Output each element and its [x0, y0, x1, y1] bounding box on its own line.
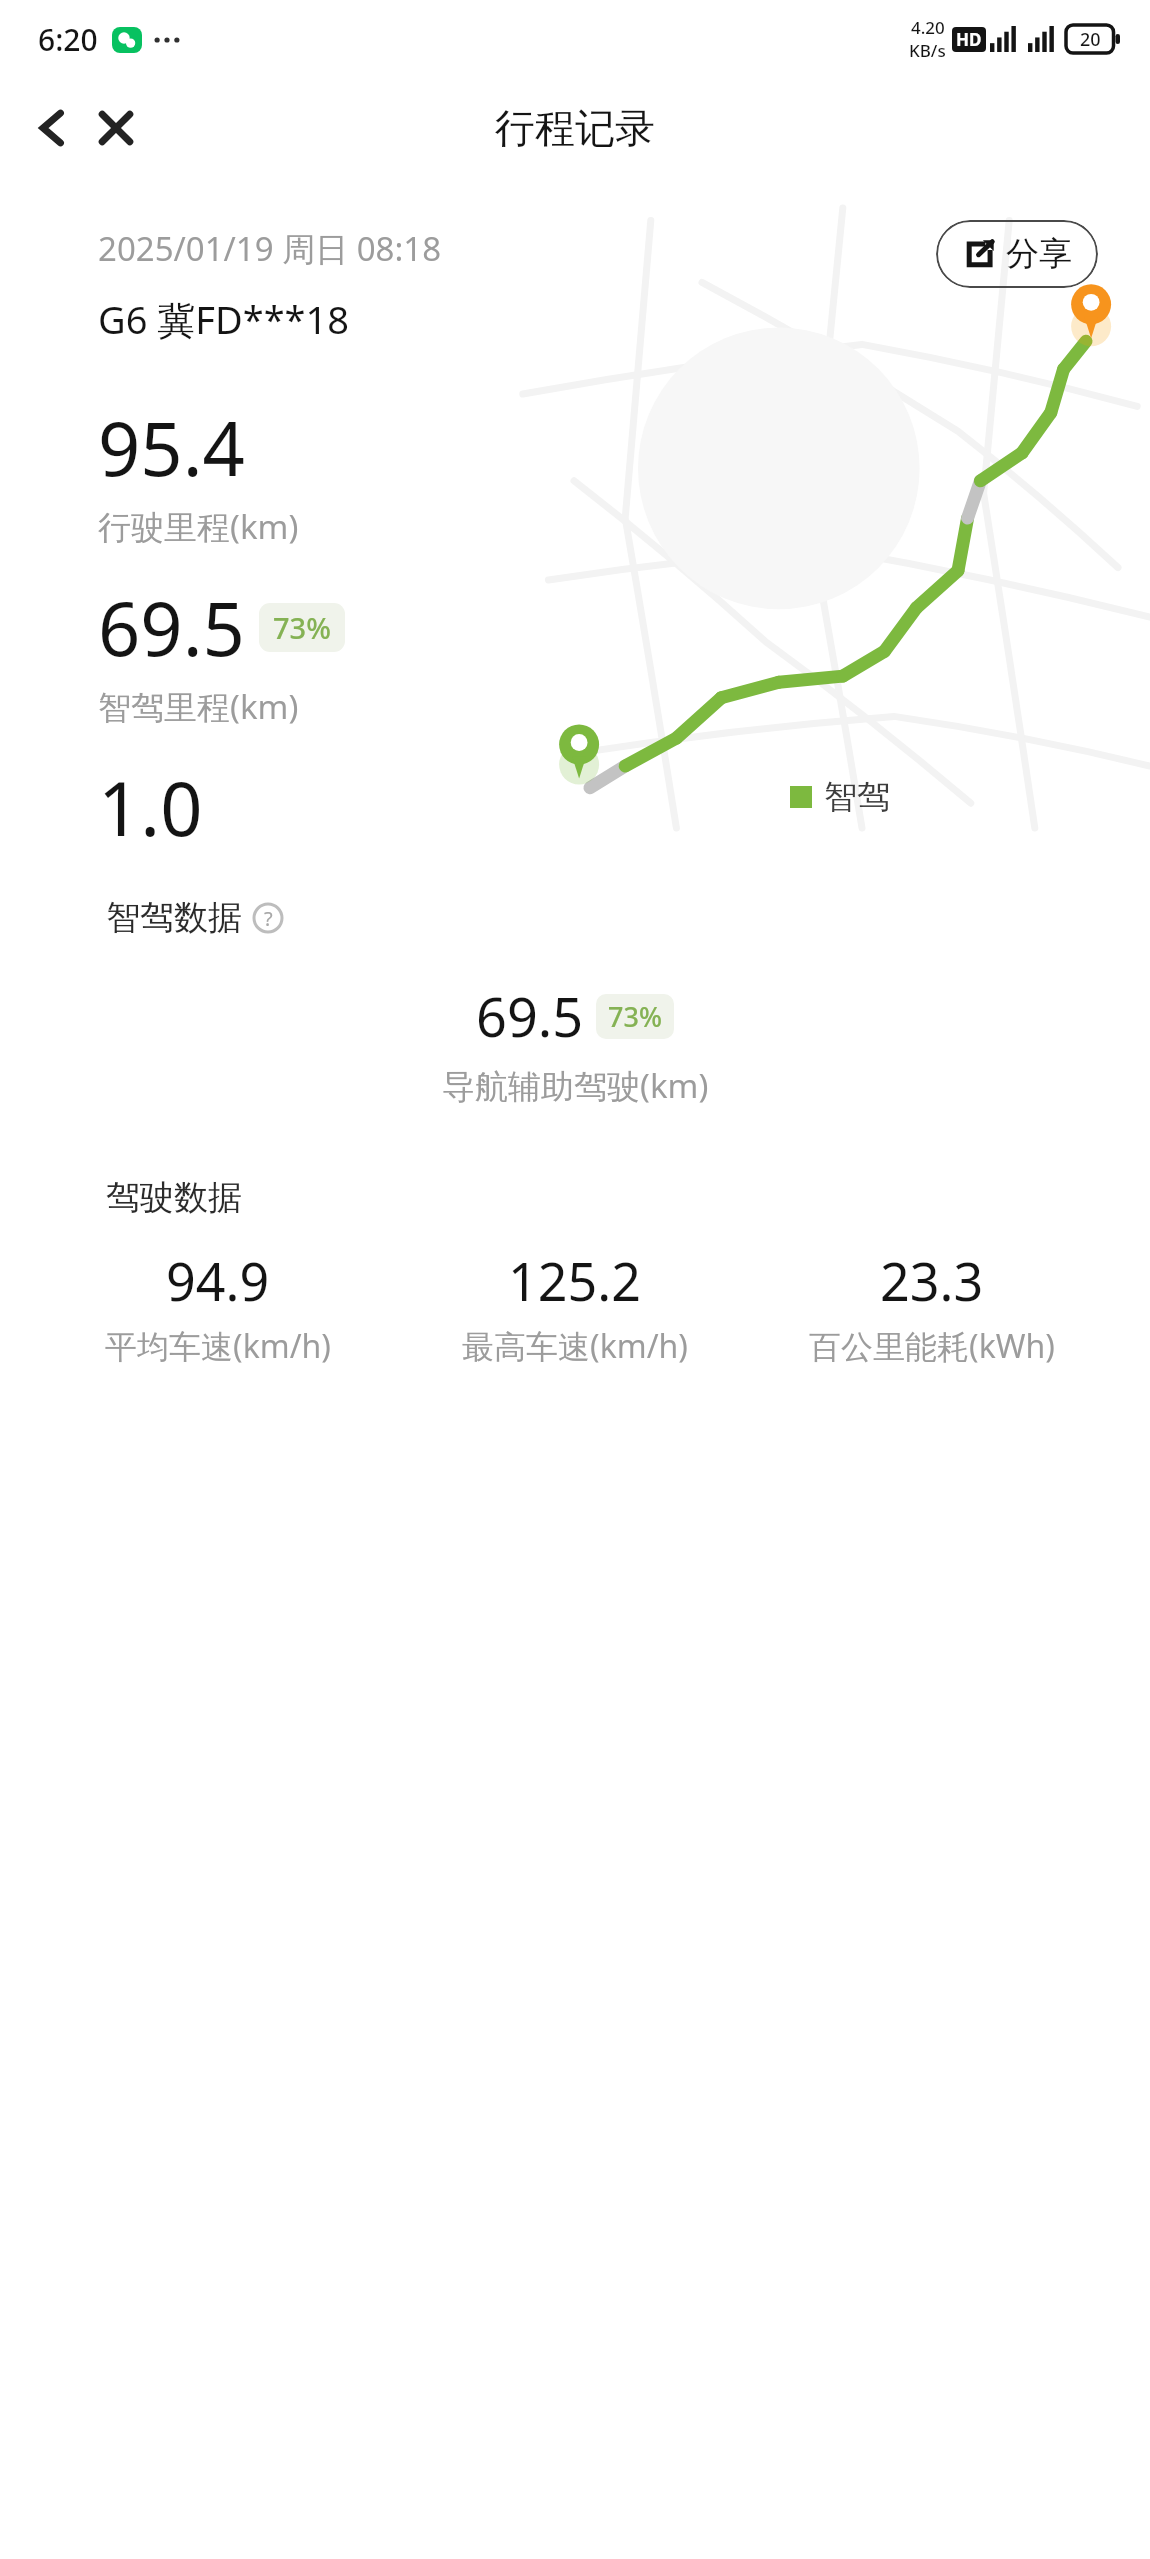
staticText: 导航辅助驾驶(km)	[442, 1063, 709, 1108]
staticText: 69.5	[476, 979, 584, 1053]
staticText: 分享	[1006, 233, 1072, 275]
staticText: 94.9	[166, 1245, 270, 1316]
staticText: 智驾	[824, 776, 890, 818]
button[interactable]: 分享	[936, 220, 1098, 288]
staticText: 平均车速(km/h)	[105, 1324, 331, 1368]
staticText: 1.0	[98, 757, 203, 838]
staticText: 95.4	[98, 397, 245, 498]
staticText: KB/s	[909, 39, 946, 62]
staticText: 20	[1080, 27, 1101, 52]
staticText: 73%	[608, 998, 662, 1035]
staticText: 125.2	[508, 1245, 641, 1316]
staticText: 行驶里程(km)	[98, 504, 299, 549]
staticText: 2025/01/19 周日 08:18	[98, 226, 442, 271]
button[interactable]: Help	[252, 902, 284, 934]
staticText: 智驾里程(km)	[98, 684, 299, 729]
staticText: G6 冀FD***18	[98, 293, 350, 345]
staticText: HD	[956, 28, 982, 51]
staticText: ?	[264, 905, 273, 932]
staticText: 23.3	[880, 1245, 984, 1316]
staticText: 6:20	[38, 19, 98, 60]
staticText: 智驾数据	[106, 896, 242, 939]
staticText: 百公里能耗(kWh)	[809, 1324, 1055, 1368]
button[interactable]: Back	[22, 97, 84, 159]
staticText: 行程记录	[495, 103, 655, 153]
staticText: 73%	[273, 608, 331, 647]
staticText: 驾驶数据	[106, 1176, 242, 1219]
staticText: 最高车速(km/h)	[462, 1324, 688, 1368]
staticText: 4.20	[911, 16, 945, 39]
staticText: 69.5	[98, 577, 245, 678]
button[interactable]: Close	[86, 98, 146, 158]
